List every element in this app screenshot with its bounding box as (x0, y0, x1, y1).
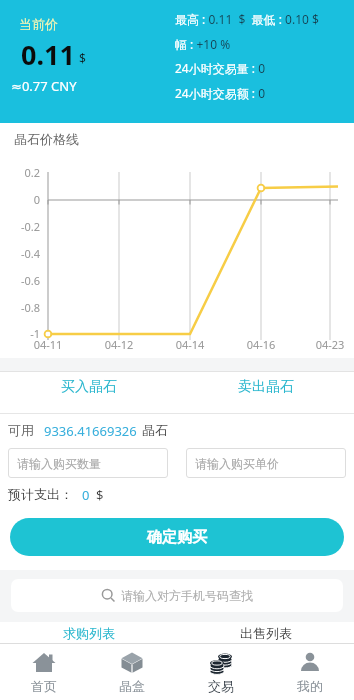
staticText: 0.2 (0, 165, 40, 180)
button[interactable]: 买入晶石 (0, 372, 177, 413)
staticText: 0 (82, 486, 90, 504)
staticText: 出售列表 (240, 625, 292, 641)
staticText: 晶石价格线 (14, 131, 79, 147)
button[interactable]: 出售列表 (177, 622, 354, 643)
staticText: 当前价 (19, 16, 58, 32)
button[interactable]: 交易 (176, 644, 265, 700)
staticText: 预计支出： (8, 486, 73, 502)
staticText: 求购列表 (63, 625, 115, 641)
staticText: 可用 (8, 422, 34, 438)
staticText: 24小时交易量 : 0 (175, 60, 266, 76)
button[interactable]: 确定购买 (10, 518, 344, 556)
staticText: 0 (0, 192, 40, 207)
button[interactable]: 晶盒 (88, 644, 176, 700)
staticText: 04-16 (241, 337, 281, 352)
staticText: 交易 (208, 678, 234, 694)
staticText: 04-23 (310, 337, 350, 352)
staticText: 晶石 (142, 422, 168, 438)
staticText: 0.11 (21, 36, 75, 73)
staticText: 确定购买 (147, 528, 207, 547)
staticText: -0.4 (0, 246, 40, 261)
staticText: 04-11 (28, 337, 68, 352)
staticText: 晶盒 (119, 678, 145, 694)
staticText: 9336.41669326 (44, 422, 137, 440)
button[interactable]: 首页 (0, 644, 88, 700)
staticText: 04-14 (170, 337, 210, 352)
button[interactable]: 我的 (265, 644, 354, 700)
staticText: $ (96, 486, 104, 504)
staticText: 首页 (31, 678, 57, 694)
staticText: 04-12 (99, 337, 139, 352)
staticText: 请输入购买单价 (195, 456, 279, 471)
staticText: 我的 (297, 678, 323, 694)
staticText: ≈0.77 CNY (11, 77, 77, 95)
staticText: 24小时交易额 : 0 (175, 85, 266, 101)
button[interactable]: 卖出晶石 (177, 372, 354, 413)
staticText: 最高 : 0.11 $ 最低 : 0.10 $ (175, 11, 319, 27)
staticText: 请输入购买数量 (17, 456, 101, 471)
staticText: 幅 : +10 % (175, 36, 231, 52)
staticText: 请输入对方手机号码查找 (121, 588, 253, 603)
button[interactable]: 请输入购买单价 (186, 448, 346, 478)
button[interactable]: 请输入对方手机号码查找 (11, 579, 343, 612)
staticText: 买入晶石 (61, 378, 117, 396)
staticText: $ (79, 50, 86, 66)
staticText: -1 (0, 326, 40, 341)
button[interactable]: 请输入购买数量 (8, 448, 168, 478)
button[interactable]: 求购列表 (0, 622, 177, 643)
staticText: -0.8 (0, 300, 40, 315)
staticText: -0.6 (0, 273, 40, 288)
staticText: -0.2 (0, 219, 40, 234)
staticText: 卖出晶石 (238, 378, 294, 396)
